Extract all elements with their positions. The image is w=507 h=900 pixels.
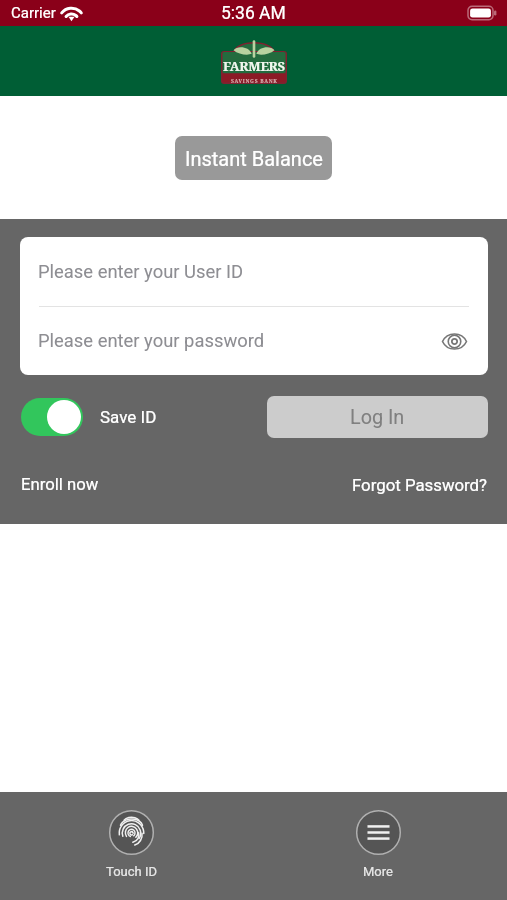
- button[interactable]: Instant Balance: [175, 136, 332, 180]
- staticText: Please enter your User ID: [38, 261, 244, 283]
- button[interactable]: Forgot Password?: [352, 475, 488, 495]
- button[interactable]: Save ID toggle: [21, 398, 83, 436]
- staticText: More: [363, 864, 393, 879]
- button[interactable]: Please enter your password: [20, 307, 488, 375]
- staticText: Log In: [350, 406, 405, 429]
- staticText: Save ID: [100, 407, 157, 427]
- button[interactable]: Enroll now: [21, 475, 99, 495]
- staticText: Please enter your password: [38, 330, 265, 352]
- staticText: 5:36 AM: [221, 3, 286, 24]
- button[interactable]: Show password: [440, 327, 468, 355]
- staticText: SAVINGS BANK: [231, 78, 278, 84]
- button[interactable]: Please enter your User ID: [20, 237, 488, 306]
- staticText: Carrier: [11, 4, 56, 22]
- button[interactable]: More: [336, 804, 420, 885]
- staticText: FARMERS: [223, 57, 285, 75]
- staticText: Touch ID: [106, 864, 157, 879]
- staticText: Enroll now: [21, 475, 99, 495]
- staticText: Instant Balance: [185, 147, 323, 170]
- button[interactable]: Log In: [267, 396, 488, 438]
- staticText: Forgot Password?: [352, 475, 488, 495]
- button[interactable]: Touch ID: [89, 804, 173, 885]
